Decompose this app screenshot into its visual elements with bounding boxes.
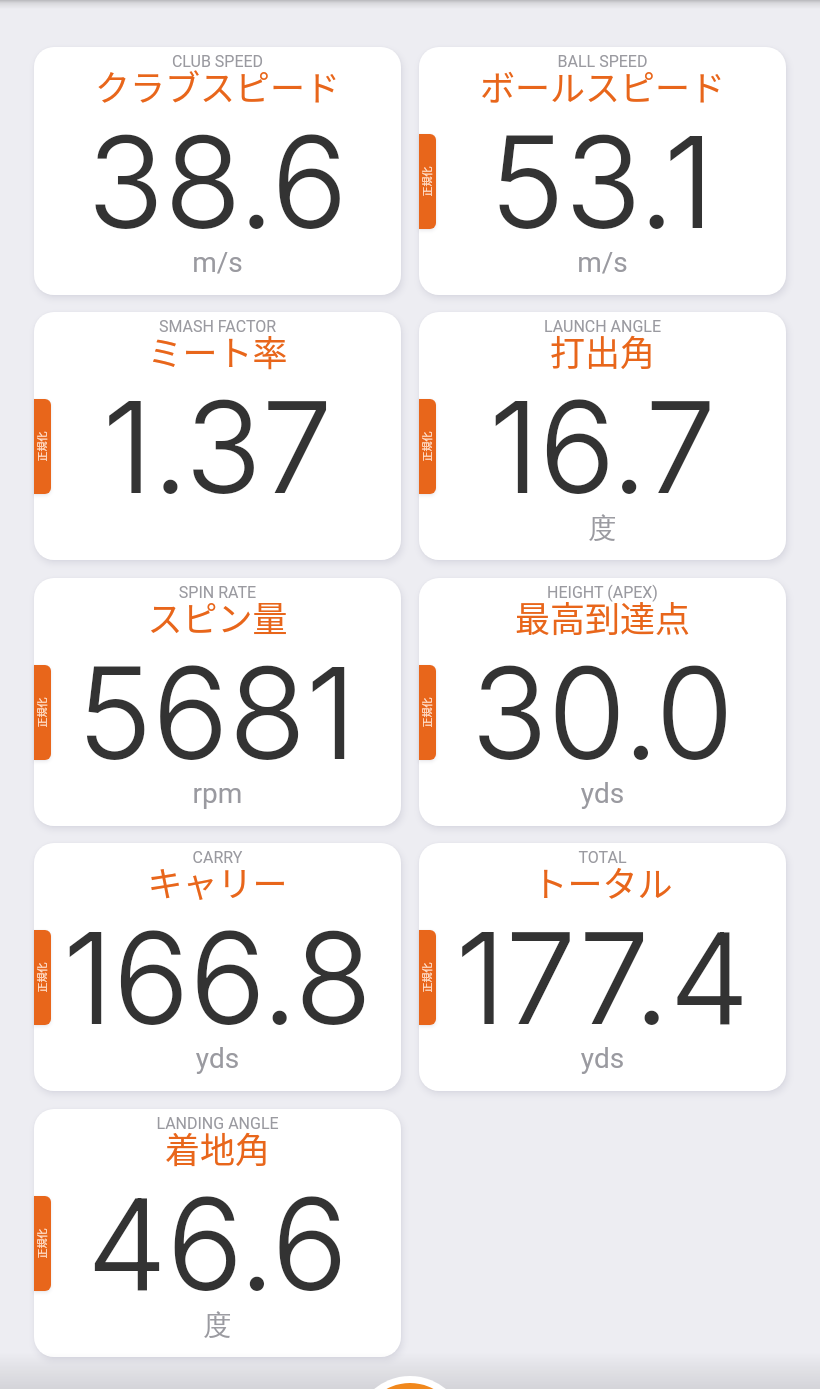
button[interactable]: CARRY	[34, 843, 401, 1091]
staticText: 着地角	[34, 1122, 401, 1173]
staticText: 正規化	[34, 1196, 48, 1291]
staticText: トータル	[419, 856, 786, 907]
staticText: TOTAL	[419, 848, 786, 867]
staticText: 正規化	[419, 399, 433, 494]
staticText: 最高到達点	[419, 591, 786, 642]
button[interactable]: 正規化	[419, 930, 436, 1025]
staticText: yds	[419, 777, 786, 810]
button[interactable]: SPIN RATE	[34, 578, 401, 826]
staticText: 166.8	[34, 902, 401, 1054]
staticText: 度	[34, 1308, 401, 1343]
staticText: 正規化	[419, 930, 433, 1025]
staticText: SPIN RATE	[34, 583, 401, 602]
staticText: 打出角	[419, 325, 786, 376]
staticText: ミート率	[34, 325, 401, 376]
staticText: 5681	[34, 637, 401, 789]
button[interactable]: 正規化	[419, 665, 436, 760]
staticText: rpm	[34, 777, 401, 810]
button[interactable]: Record	[361, 1383, 459, 1389]
button[interactable]: 正規化	[419, 399, 436, 494]
staticText: 1.37	[34, 371, 401, 523]
button[interactable]: CLUB SPEED	[34, 47, 401, 295]
button[interactable]: SMASH FACTOR	[34, 312, 401, 560]
staticText: 46.6	[34, 1168, 401, 1320]
staticText: 177.4	[419, 902, 786, 1054]
staticText: 正規化	[34, 665, 48, 760]
staticText: 正規化	[419, 665, 433, 760]
button[interactable]: LAUNCH ANGLE	[419, 312, 786, 560]
button[interactable]: 正規化	[34, 1196, 51, 1291]
staticText: 53.1	[419, 106, 786, 258]
staticText: スピン量	[34, 591, 401, 642]
staticText: 正規化	[419, 134, 433, 229]
staticText: クラブスピード	[34, 60, 401, 111]
staticText: HEIGHT (APEX)	[419, 583, 786, 602]
button[interactable]: TOTAL	[419, 843, 786, 1091]
staticText: BALL SPEED	[419, 52, 786, 71]
button[interactable]: HEIGHT (APEX)	[419, 578, 786, 826]
button[interactable]: 正規化	[419, 134, 436, 229]
staticText: キャリー	[34, 856, 401, 907]
staticText: LANDING ANGLE	[34, 1114, 401, 1133]
staticText: 16.7	[419, 371, 786, 523]
staticText: m/s	[419, 246, 786, 279]
button[interactable]: LANDING ANGLE	[34, 1109, 401, 1357]
button[interactable]: 正規化	[34, 665, 51, 760]
staticText: 度	[419, 511, 786, 546]
staticText: SMASH FACTOR	[34, 317, 401, 336]
button[interactable]: 正規化	[34, 399, 51, 494]
staticText: yds	[34, 1042, 401, 1075]
staticText: LAUNCH ANGLE	[419, 317, 786, 336]
button[interactable]: BALL SPEED	[419, 47, 786, 295]
staticText: m/s	[34, 246, 401, 279]
staticText: yds	[419, 1042, 786, 1075]
staticText: ボールスピード	[419, 60, 786, 111]
staticText: 正規化	[34, 399, 48, 494]
staticText: CLUB SPEED	[34, 52, 401, 71]
staticText: 正規化	[34, 930, 48, 1025]
staticText: CARRY	[34, 848, 401, 867]
staticText: 30.0	[419, 637, 786, 789]
staticText: 38.6	[34, 106, 401, 258]
button[interactable]: 正規化	[34, 930, 51, 1025]
